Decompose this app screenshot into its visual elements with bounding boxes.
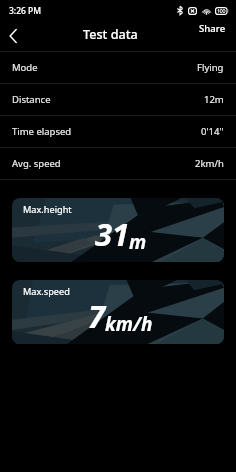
staticText: 12m [204,93,224,106]
staticText: Test data [83,26,138,43]
staticText: 3:26 PM [9,5,42,17]
staticText: km/h [105,311,153,337]
staticText: Distance [12,93,51,106]
staticText: m [129,229,147,255]
staticText: Avg. speed [12,157,61,170]
staticText: Time elapsed [12,125,72,138]
button[interactable]: Avg. speed [0,148,236,179]
button[interactable]: Back [0,21,26,51]
staticText: 7 [88,295,106,337]
button[interactable]: Max.height [12,198,224,262]
button[interactable]: Max.speed [12,280,224,344]
button[interactable]: Distance [0,84,236,115]
staticText: Share [199,22,226,35]
button[interactable]: Mode [0,52,236,83]
staticText: 31 [95,213,130,255]
staticText: 2km/h [195,157,224,170]
staticText: Max.speed [23,285,70,298]
staticText: Flying [197,61,224,74]
staticText: Mode [12,61,38,74]
button[interactable]: Time elapsed [0,116,236,147]
button[interactable]: Share [188,21,236,51]
staticText: 0'14'' [201,125,224,138]
staticText: Max.height [23,203,72,216]
